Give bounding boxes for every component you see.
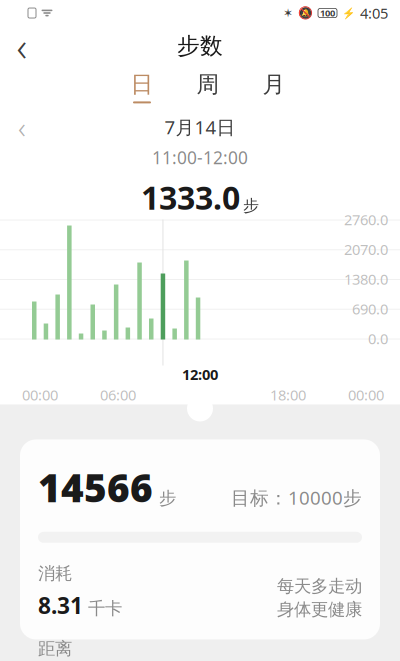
staticText: 690.0 bbox=[352, 299, 388, 318]
staticText: 8.31 bbox=[38, 590, 83, 620]
staticText: 100 bbox=[320, 7, 335, 19]
staticText: 身体更健康 bbox=[277, 599, 362, 620]
staticText: 1380.0 bbox=[344, 269, 388, 289]
staticText: 2760.0 bbox=[344, 210, 388, 229]
staticText: 1333.0 bbox=[141, 176, 240, 218]
staticText: 每天多走动 bbox=[277, 576, 362, 597]
staticText: 18:00 bbox=[270, 385, 306, 404]
staticText: 7月14日 bbox=[164, 115, 235, 139]
staticText: 月 bbox=[262, 71, 285, 98]
staticText: 距离 bbox=[38, 638, 72, 659]
staticText: 4:05 bbox=[360, 3, 388, 23]
staticText: 步 bbox=[159, 487, 176, 509]
staticText: 消耗 bbox=[38, 563, 72, 584]
button[interactable]: Back bbox=[0, 28, 44, 64]
staticText: 周 bbox=[196, 71, 219, 98]
staticText: 2070.0 bbox=[344, 239, 388, 259]
staticText: 千卡 bbox=[88, 598, 122, 619]
button[interactable]: 月 bbox=[250, 71, 298, 103]
staticText: 步数 bbox=[177, 32, 223, 60]
staticText: 12:00 bbox=[182, 364, 218, 384]
staticText: ‹ bbox=[18, 107, 26, 146]
staticText: 14566 bbox=[38, 461, 153, 513]
staticText: 0.0 bbox=[368, 329, 388, 348]
staticText: 11:00-12:00 bbox=[152, 146, 248, 169]
staticText: ⚡ bbox=[342, 7, 355, 19]
staticText: 日 bbox=[130, 71, 153, 98]
staticText: 06:00 bbox=[100, 385, 136, 404]
staticText: ‹ bbox=[16, 19, 27, 72]
staticText: 步 bbox=[243, 196, 259, 216]
staticText: ✶ bbox=[283, 6, 293, 20]
staticText: 00:00 bbox=[22, 385, 58, 404]
staticText: 🔕 bbox=[298, 6, 313, 20]
staticText: 目标：10000步 bbox=[231, 485, 362, 510]
button[interactable]: Previous day bbox=[0, 113, 44, 141]
button[interactable]: 日 bbox=[118, 71, 166, 103]
staticText: 00:00 bbox=[348, 385, 384, 404]
button[interactable]: 周 bbox=[184, 71, 232, 103]
